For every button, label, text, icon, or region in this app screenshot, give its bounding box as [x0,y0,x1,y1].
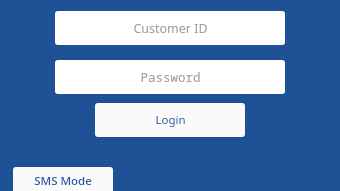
button[interactable]: SMS Mode [13,167,113,191]
staticText: Customer ID [133,20,208,37]
button[interactable]: Login [95,103,245,137]
staticText: Password [140,69,201,86]
button[interactable]: Customer ID [55,11,285,45]
staticText: Login [155,112,186,128]
staticText: SMS Mode [34,173,92,189]
button[interactable]: Password [55,60,285,94]
